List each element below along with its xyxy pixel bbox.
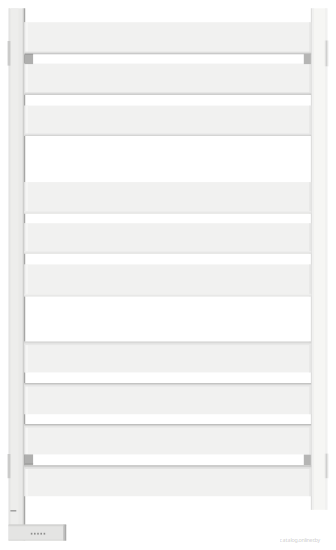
- staticText: catalog.onliner.by: [279, 536, 320, 544]
